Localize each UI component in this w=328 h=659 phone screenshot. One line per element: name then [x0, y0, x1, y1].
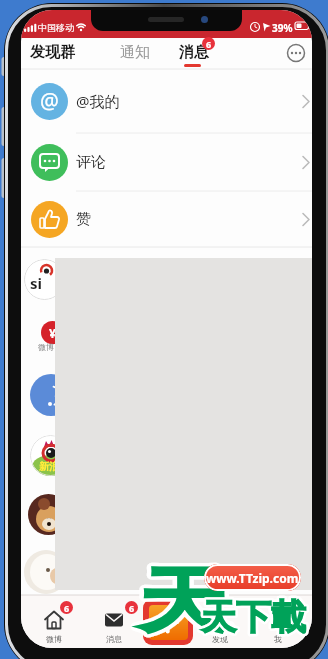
staticText: 中国移动: [38, 22, 74, 33]
staticText: www.TTzip.com: [206, 570, 299, 586]
staticText: 通知: [120, 43, 150, 62]
staticText: ¥: [49, 325, 56, 341]
staticText: 39%: [272, 21, 293, 35]
button[interactable]: 消息: [88, 595, 140, 648]
staticText: 天下載: [201, 595, 306, 639]
staticText: 赞: [76, 210, 91, 229]
button[interactable]: 评论: [21, 133, 312, 191]
staticText: 天下載: [201, 595, 306, 639]
staticText: 微博: [46, 634, 62, 644]
staticText: 微博: [38, 342, 54, 352]
button[interactable]: [143, 599, 193, 645]
staticText: 发现: [212, 634, 228, 644]
staticText: 天: [139, 558, 227, 646]
staticText: 消息: [106, 634, 122, 644]
staticText: 6: [129, 602, 135, 614]
button[interactable]: 发现群: [21, 38, 116, 69]
button[interactable]: 发现: [194, 595, 246, 648]
staticText: 评论: [76, 153, 106, 172]
button[interactable]: [285, 42, 307, 64]
staticText: 6: [64, 602, 70, 614]
staticText: @我的: [76, 91, 120, 111]
button[interactable]: 通知: [116, 38, 171, 69]
staticText: 发现群: [30, 43, 75, 62]
button[interactable]: 消息: [175, 38, 230, 69]
button[interactable]: 我: [252, 595, 304, 648]
button[interactable]: @: [21, 69, 312, 133]
staticText: 天: [139, 558, 227, 646]
staticText: 消息: [179, 43, 209, 62]
staticText: @: [40, 87, 59, 116]
staticText: 我: [274, 634, 282, 644]
staticText: 新浪: [39, 460, 59, 473]
button[interactable]: 赞: [21, 191, 312, 247]
staticText: 6: [206, 38, 212, 50]
staticText: si: [30, 273, 43, 293]
button[interactable]: 微博: [28, 595, 80, 648]
